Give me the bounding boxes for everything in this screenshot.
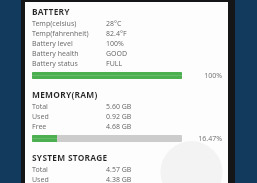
staticText: 4.57 GB bbox=[106, 165, 132, 175]
staticText: 0.92 GB bbox=[106, 112, 132, 122]
staticText: 16.47% bbox=[189, 134, 222, 144]
staticText: 82.4°F bbox=[106, 29, 127, 39]
staticText: MEMORY(RAM) bbox=[32, 89, 98, 100]
staticText: FULL bbox=[106, 59, 123, 69]
staticText: Battery status bbox=[32, 59, 106, 69]
staticText: 28°C bbox=[106, 19, 122, 29]
button[interactable]: Free bbox=[32, 122, 222, 132]
button[interactable]: Battery level bbox=[32, 39, 222, 49]
staticText: Battery health bbox=[32, 49, 106, 59]
staticText: Used bbox=[32, 175, 106, 183]
staticText: GOOD bbox=[106, 49, 128, 59]
staticText: SYSTEM STORAGE bbox=[32, 152, 108, 163]
staticText: BATTERY bbox=[32, 6, 70, 17]
button[interactable]: Total bbox=[32, 165, 222, 175]
staticText: Temp(celsius) bbox=[32, 19, 106, 29]
staticText: 100% bbox=[106, 39, 124, 49]
staticText: Total bbox=[32, 102, 106, 112]
staticText: Total bbox=[32, 165, 106, 175]
staticText: 5.60 GB bbox=[106, 102, 132, 112]
button[interactable]: Temp(fahrenheit) bbox=[32, 29, 222, 39]
button[interactable]: 100% bbox=[32, 70, 222, 81]
button[interactable]: Used bbox=[32, 175, 222, 183]
button[interactable]: Battery status bbox=[32, 59, 222, 69]
button[interactable]: Temp(celsius) bbox=[32, 19, 222, 29]
button[interactable]: Used bbox=[32, 112, 222, 122]
staticText: Free bbox=[32, 122, 106, 132]
staticText: Battery level bbox=[32, 39, 106, 49]
button[interactable]: 16.47% bbox=[32, 133, 222, 144]
staticText: Temp(fahrenheit) bbox=[32, 29, 106, 39]
staticText: Used bbox=[32, 112, 106, 122]
button[interactable]: Battery health bbox=[32, 49, 222, 59]
button[interactable]: Total bbox=[32, 102, 222, 112]
staticText: 100% bbox=[189, 71, 222, 81]
staticText: 4.68 GB bbox=[106, 122, 132, 132]
staticText: 4.38 GB bbox=[106, 175, 132, 183]
